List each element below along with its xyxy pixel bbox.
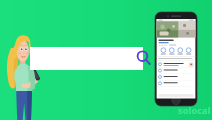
button[interactable]: Search field (30, 47, 143, 70)
staticText: solocal (178, 104, 211, 116)
button[interactable]: Search (133, 47, 155, 70)
